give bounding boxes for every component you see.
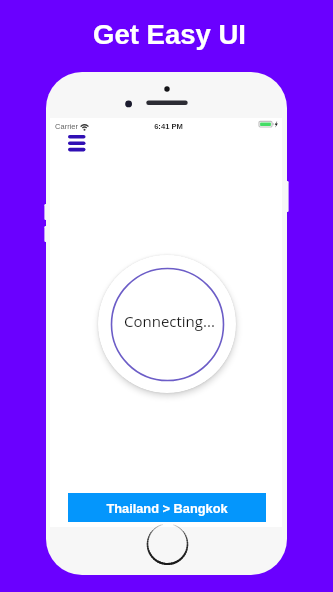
staticText: Thailand > Bangkok [106, 501, 228, 515]
staticText: Connecting... [124, 311, 215, 331]
staticText: Carrier [55, 122, 78, 130]
button[interactable]: Menu [67, 134, 88, 154]
button[interactable]: Thailand > Bangkok [68, 493, 266, 522]
staticText: 6:41 PM [154, 122, 183, 130]
button[interactable]: Home [145, 522, 191, 568]
staticText: Get Easy UI [93, 19, 246, 50]
button[interactable] [98, 255, 236, 393]
